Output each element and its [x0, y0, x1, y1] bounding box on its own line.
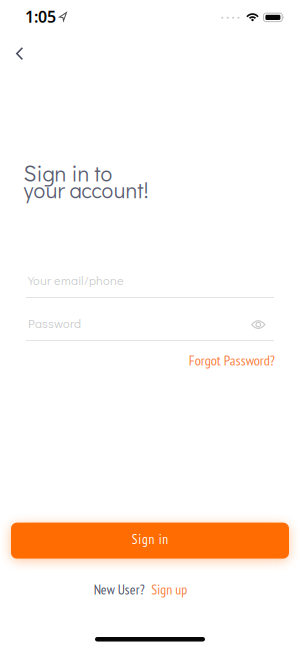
button[interactable]: Show password — [249, 320, 267, 329]
staticText: Your email/phone — [28, 272, 124, 288]
staticText: Password — [28, 315, 81, 331]
button[interactable]: Sign in — [11, 523, 289, 559]
staticText: Forgot Password? — [189, 351, 275, 369]
button[interactable]: Forgot Password? — [189, 351, 275, 369]
button[interactable]: Sign up — [151, 581, 187, 598]
staticText: Sign up — [151, 581, 187, 598]
staticText: New User? — [94, 581, 145, 598]
staticText: Sign in to — [23, 158, 112, 187]
staticText: 1:05 — [25, 6, 56, 27]
button[interactable]: Back — [7, 40, 32, 67]
staticText: Sign in — [132, 530, 168, 548]
staticText: your account! — [23, 175, 148, 204]
